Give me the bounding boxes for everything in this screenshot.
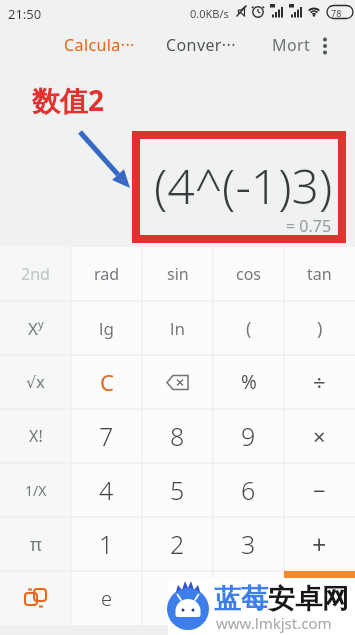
staticText: % — [241, 369, 257, 395]
staticText: sin — [167, 263, 189, 285]
button[interactable]: − — [284, 463, 355, 517]
button[interactable]: e — [71, 571, 142, 625]
staticText: 3 — [241, 527, 256, 561]
staticText: − — [313, 475, 326, 505]
button[interactable]: 4 — [71, 463, 142, 517]
button[interactable] — [284, 571, 355, 625]
button[interactable]: ( — [213, 301, 284, 355]
staticText: 78 — [331, 7, 342, 19]
staticText: 8 — [170, 419, 185, 453]
button[interactable]: lg — [71, 301, 142, 355]
button[interactable]: 5 — [142, 463, 213, 517]
button[interactable]: rad — [71, 247, 142, 301]
staticText: lg — [99, 317, 114, 340]
button[interactable]: √x — [0, 355, 71, 409]
staticText: www.lmkjst.com — [216, 613, 332, 633]
staticText: 21:50 — [8, 5, 42, 23]
staticText: cos — [236, 263, 262, 285]
button[interactable] — [213, 571, 284, 625]
button[interactable] — [0, 571, 71, 625]
button[interactable]: 9 — [213, 409, 284, 463]
staticText: + — [312, 527, 327, 561]
staticText: (4^(-1)3) — [154, 153, 333, 218]
staticText: 7 — [99, 419, 114, 453]
staticText: ) — [317, 316, 323, 341]
staticText: 0.0KB/s — [190, 6, 229, 21]
staticText: 6 — [241, 473, 256, 507]
button[interactable]: tan — [284, 247, 355, 301]
button[interactable]: ÷ — [284, 355, 355, 409]
button[interactable]: ln — [142, 301, 213, 355]
staticText: 4 — [99, 473, 114, 507]
button[interactable]: cos — [213, 247, 284, 301]
staticText: 1/X — [25, 481, 47, 500]
staticText: X! — [29, 425, 43, 447]
staticText: × — [313, 421, 326, 451]
button[interactable]: 7 — [71, 409, 142, 463]
button[interactable]: 1 — [71, 517, 142, 571]
staticText: 2 — [170, 527, 185, 561]
staticText: 数值2 — [32, 81, 105, 119]
button[interactable] — [319, 37, 331, 55]
staticText: e — [101, 585, 113, 612]
staticText: 蓝莓安卓网 — [214, 582, 349, 616]
button[interactable]: 2nd — [0, 247, 71, 301]
button[interactable]: π — [0, 517, 71, 571]
button[interactable]: 1/X — [0, 463, 71, 517]
button[interactable]: + — [284, 517, 355, 571]
button[interactable]: 3 — [213, 517, 284, 571]
button[interactable] — [142, 571, 213, 625]
staticText: 2nd — [21, 263, 50, 285]
button[interactable]: 8 — [142, 409, 213, 463]
button[interactable]: sin — [142, 247, 213, 301]
staticText: tan — [307, 263, 332, 285]
button[interactable]: C — [71, 355, 142, 409]
button[interactable]: Xy — [0, 301, 71, 355]
staticText: ÷ — [313, 367, 326, 397]
button[interactable] — [284, 571, 355, 625]
staticText: ln — [170, 317, 185, 340]
button[interactable]: % — [213, 355, 284, 409]
button[interactable]: Mort — [272, 34, 311, 56]
button[interactable]: Calcula··· — [64, 34, 135, 56]
staticText: ( — [246, 316, 252, 341]
staticText: 5 — [170, 473, 185, 507]
staticText: 1 — [99, 527, 114, 561]
staticText: π — [30, 532, 42, 557]
button[interactable]: 6 — [213, 463, 284, 517]
button[interactable]: Conver··· — [166, 34, 236, 56]
staticText: C — [100, 367, 114, 397]
button[interactable]: 2 — [142, 517, 213, 571]
button[interactable] — [142, 355, 213, 409]
button[interactable]: X! — [0, 409, 71, 463]
staticText: rad — [94, 263, 120, 285]
staticText: 9 — [241, 419, 256, 453]
staticText: Xy — [28, 316, 44, 340]
button[interactable]: × — [284, 409, 355, 463]
button[interactable]: ) — [284, 301, 355, 355]
staticText: = 0.75 — [286, 215, 332, 237]
staticText: √x — [26, 371, 45, 393]
